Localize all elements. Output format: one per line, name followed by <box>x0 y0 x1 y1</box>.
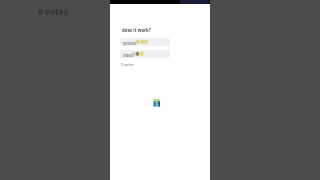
other: Gift <box>153 99 160 107</box>
staticText: yessss <box>123 40 137 46</box>
staticText: nooo <box>123 52 134 58</box>
staticText: does it work? <box>122 27 151 33</box>
button[interactable]: nooo <box>120 50 170 58</box>
staticText: 0 votes <box>38 6 68 17</box>
button[interactable]: yessss <box>120 38 170 46</box>
staticText: 5 votes <box>121 62 134 67</box>
